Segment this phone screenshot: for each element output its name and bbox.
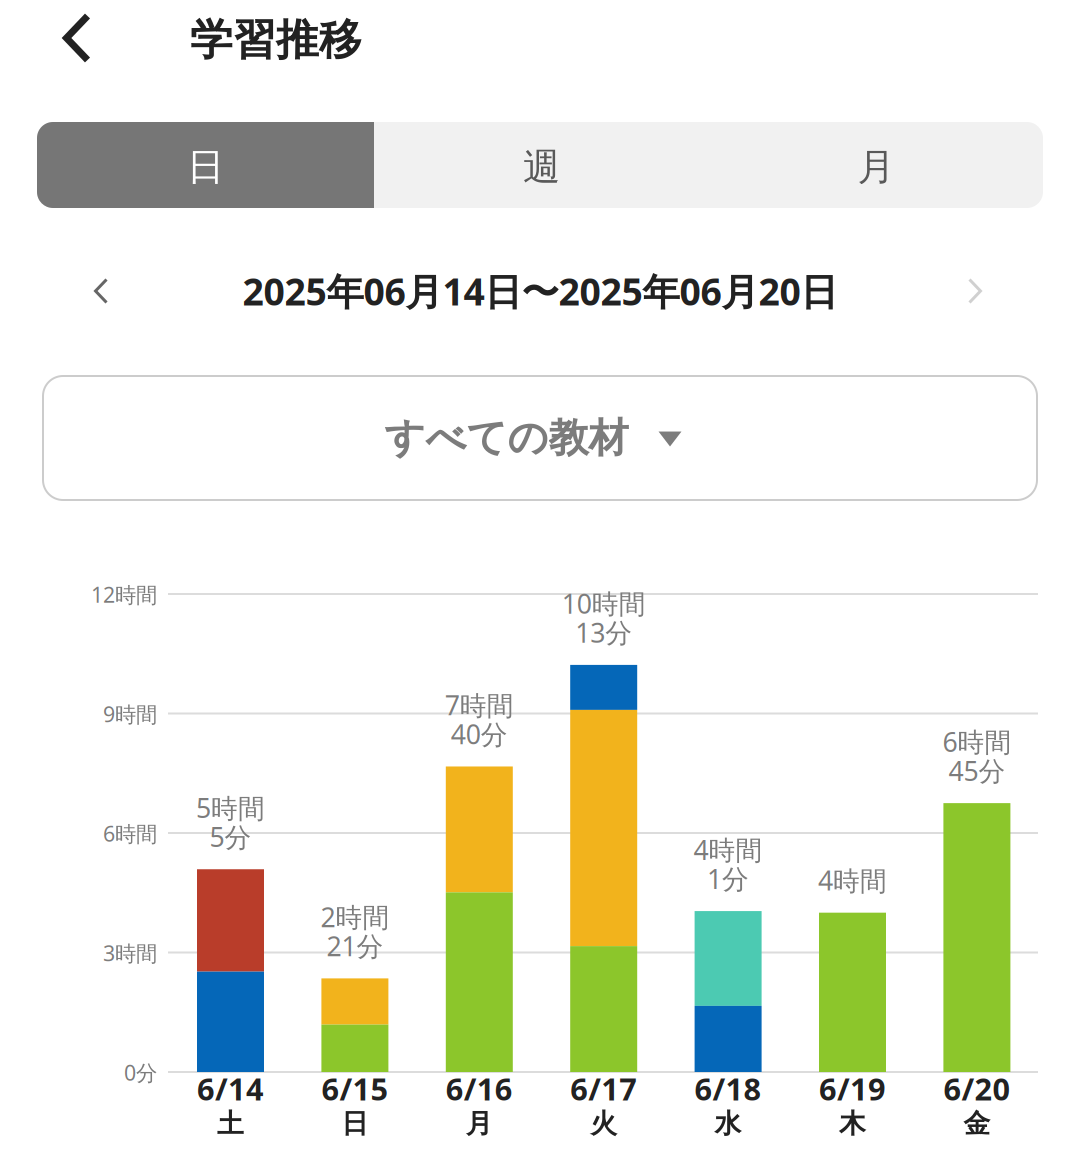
staticText: 6時間	[942, 724, 1011, 759]
staticText: 13分	[575, 615, 632, 650]
button[interactable]: Back	[25, 0, 129, 92]
staticText: 12時間	[91, 580, 157, 609]
staticText: 0分	[124, 1058, 157, 1087]
staticText: 月	[466, 1107, 493, 1140]
button[interactable]: Next period	[927, 256, 1023, 326]
staticText: 5時間	[196, 790, 265, 825]
staticText: 6/17	[570, 1068, 637, 1109]
staticText: 6時間	[103, 819, 157, 848]
staticText: 火	[590, 1107, 617, 1140]
button[interactable]: すべての教材	[43, 376, 1037, 500]
staticText: 1分	[707, 861, 749, 896]
staticText: 3時間	[103, 939, 157, 967]
staticText: 日	[187, 144, 224, 190]
staticText: 7時間	[445, 687, 514, 723]
staticText: 木	[839, 1107, 866, 1140]
staticText: 6/14	[197, 1068, 264, 1109]
staticText: 水	[715, 1107, 742, 1140]
staticText: すべての教材	[384, 413, 628, 462]
staticText: 6/20	[943, 1068, 1010, 1109]
button[interactable]: 日	[37, 122, 374, 208]
staticText: 週	[523, 144, 560, 190]
staticText: 9時間	[103, 700, 157, 728]
staticText: 6/19	[819, 1068, 886, 1109]
staticText: 2時間	[320, 899, 389, 935]
staticText: 金	[963, 1107, 990, 1140]
button[interactable]: 週	[374, 122, 709, 208]
staticText: 2025年06月14日〜2025年06月20日	[242, 266, 837, 316]
staticText: 10時間	[562, 586, 646, 621]
staticText: 学習推移	[190, 14, 362, 66]
staticText: 月	[857, 144, 894, 190]
staticText: 4時間	[818, 862, 887, 898]
staticText: 土	[217, 1107, 244, 1140]
staticText: 40分	[451, 716, 508, 752]
staticText: 6/18	[695, 1068, 762, 1109]
staticText: 21分	[326, 928, 383, 964]
staticText: 日	[341, 1107, 368, 1140]
staticText: 6/15	[321, 1068, 388, 1109]
staticText: 5分	[209, 819, 251, 854]
staticText: 4時間	[694, 832, 763, 867]
button[interactable]: Previous period	[53, 256, 149, 326]
button[interactable]: 学習推移	[190, 14, 370, 66]
staticText: 45分	[948, 753, 1005, 788]
staticText: 6/16	[446, 1068, 513, 1109]
button[interactable]: 月	[709, 122, 1043, 208]
